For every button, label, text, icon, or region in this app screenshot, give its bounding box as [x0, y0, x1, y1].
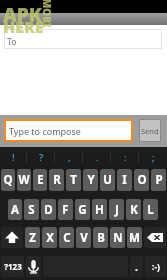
button[interactable]: :-)	[145, 256, 166, 277]
staticText: A	[11, 202, 19, 218]
button[interactable]: N	[110, 227, 125, 248]
button[interactable]: V	[76, 227, 91, 248]
button[interactable]: H	[92, 199, 107, 220]
button[interactable]: L	[143, 199, 158, 220]
staticText: ?123	[4, 261, 22, 272]
button[interactable]: Y	[83, 169, 98, 191]
button[interactable]: !	[0, 147, 27, 168]
button[interactable]: .	[130, 256, 143, 277]
button[interactable]: J	[109, 199, 124, 220]
staticText: N	[113, 230, 123, 246]
staticText: L	[147, 202, 154, 218]
button[interactable]: ,	[55, 147, 83, 168]
staticText: ;	[152, 151, 155, 164]
staticText: To	[7, 36, 17, 48]
button[interactable]: Send	[139, 119, 161, 142]
staticText: .	[96, 151, 99, 164]
button[interactable]: B	[93, 227, 108, 248]
button[interactable]: I	[117, 169, 132, 191]
button[interactable]: ?	[27, 147, 55, 168]
staticText: Type to compose	[9, 125, 81, 137]
staticText: E	[37, 172, 44, 188]
button[interactable]: Shift	[1, 227, 23, 248]
staticText: .	[135, 260, 138, 274]
staticText: HERE	[3, 16, 44, 38]
button[interactable]: G	[75, 199, 90, 220]
staticText: I	[122, 172, 127, 188]
staticText: M	[129, 230, 140, 246]
staticText: W	[18, 172, 30, 188]
staticText: !	[12, 151, 15, 164]
button[interactable]: Q	[1, 169, 15, 191]
staticText: :	[124, 151, 127, 164]
staticText: :-)	[152, 261, 160, 273]
button[interactable]: Type to compose	[4, 119, 133, 142]
staticText: Y	[87, 172, 95, 188]
button[interactable]: Z	[25, 227, 40, 248]
staticText: B	[97, 230, 105, 246]
button[interactable]: P	[151, 169, 166, 191]
button[interactable]: :	[111, 147, 139, 168]
button[interactable]: F	[58, 199, 73, 220]
button[interactable]: S	[24, 199, 39, 220]
button[interactable]: ?123	[1, 256, 24, 277]
staticText: R	[53, 172, 61, 188]
button[interactable]: U	[100, 169, 115, 191]
staticText: ,	[68, 151, 71, 164]
button[interactable]: M	[127, 227, 142, 248]
button[interactable]: W	[17, 169, 31, 191]
staticText: H	[95, 202, 104, 218]
button[interactable]: K	[126, 199, 141, 220]
staticText: J	[115, 202, 119, 218]
button[interactable]: R	[49, 169, 64, 191]
staticText: V	[80, 230, 88, 246]
staticText: X	[46, 230, 54, 246]
staticText: MOBI	[39, 0, 53, 27]
staticText: T	[70, 172, 77, 188]
staticText: Z	[29, 230, 36, 246]
button[interactable]: C	[59, 227, 74, 248]
staticText: Q	[3, 172, 13, 188]
button[interactable]: E	[33, 169, 47, 191]
button[interactable]: T	[66, 169, 81, 191]
staticText: K	[130, 202, 138, 218]
button[interactable]: ;	[139, 147, 167, 168]
button[interactable]: O	[134, 169, 149, 191]
button[interactable]: Voice input	[26, 256, 41, 277]
button[interactable]: X	[42, 227, 57, 248]
staticText: S	[28, 202, 35, 218]
staticText: APK	[3, 2, 42, 28]
button[interactable]: D	[41, 199, 56, 220]
staticText: U	[103, 172, 112, 188]
button[interactable]: .	[83, 147, 111, 168]
button[interactable]: A	[8, 199, 22, 220]
staticText: C	[63, 230, 71, 246]
staticText: ?	[39, 151, 44, 164]
button[interactable]: To	[4, 29, 162, 49]
staticText: F	[62, 202, 69, 218]
staticText: P	[155, 172, 163, 188]
staticText: O	[137, 172, 147, 188]
staticText: G	[78, 202, 87, 218]
staticText: Send	[141, 126, 159, 136]
button[interactable]: Backspace	[144, 227, 166, 248]
staticText: D	[44, 202, 53, 218]
